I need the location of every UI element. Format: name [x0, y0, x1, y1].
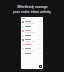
staticText: your entire inbox activity [13, 10, 51, 14]
button[interactable] [21, 20, 43, 25]
staticText: Effortlessly manage [17, 5, 48, 9]
button[interactable] [21, 47, 43, 52]
button[interactable] [21, 52, 43, 56]
button[interactable]: Compose [39, 65, 42, 68]
button[interactable] [21, 29, 43, 34]
button[interactable] [21, 25, 43, 29]
button[interactable] [21, 43, 43, 47]
button[interactable] [21, 38, 43, 43]
button[interactable] [21, 34, 43, 38]
